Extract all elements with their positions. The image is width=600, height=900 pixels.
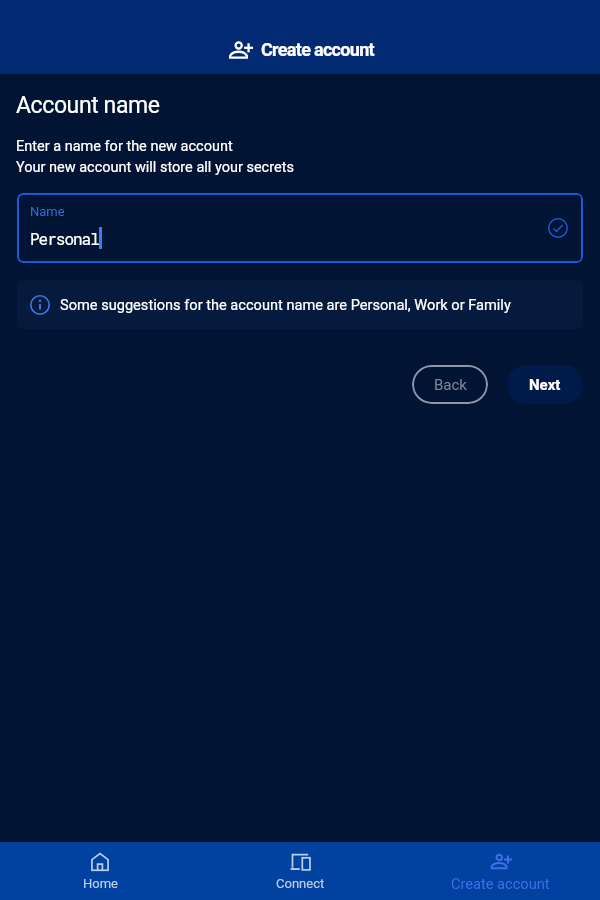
button[interactable]: Connect [200, 842, 400, 900]
staticText: Create account [261, 39, 374, 60]
staticText: Account name [16, 92, 160, 119]
button[interactable]: Next [507, 365, 583, 404]
staticText: Connect [276, 876, 325, 891]
staticText: Back [434, 376, 467, 394]
button[interactable]: Some suggestions for the account name ar… [17, 280, 583, 329]
staticText: Enter a name for the new account [16, 138, 233, 155]
staticText: Your new account will store all your sec… [16, 159, 294, 176]
button[interactable]: Create account [400, 842, 600, 900]
button[interactable]: Name [17, 193, 583, 263]
staticText: Next [529, 376, 561, 394]
staticText: Create account [451, 875, 550, 892]
button[interactable]: Back [412, 365, 488, 404]
button[interactable]: Home [0, 842, 200, 900]
staticText: Personal [30, 228, 99, 249]
other: Valid [548, 218, 568, 238]
staticText: Some suggestions for the account name ar… [60, 296, 511, 313]
staticText: Home [83, 876, 118, 891]
staticText: Name [30, 204, 65, 219]
